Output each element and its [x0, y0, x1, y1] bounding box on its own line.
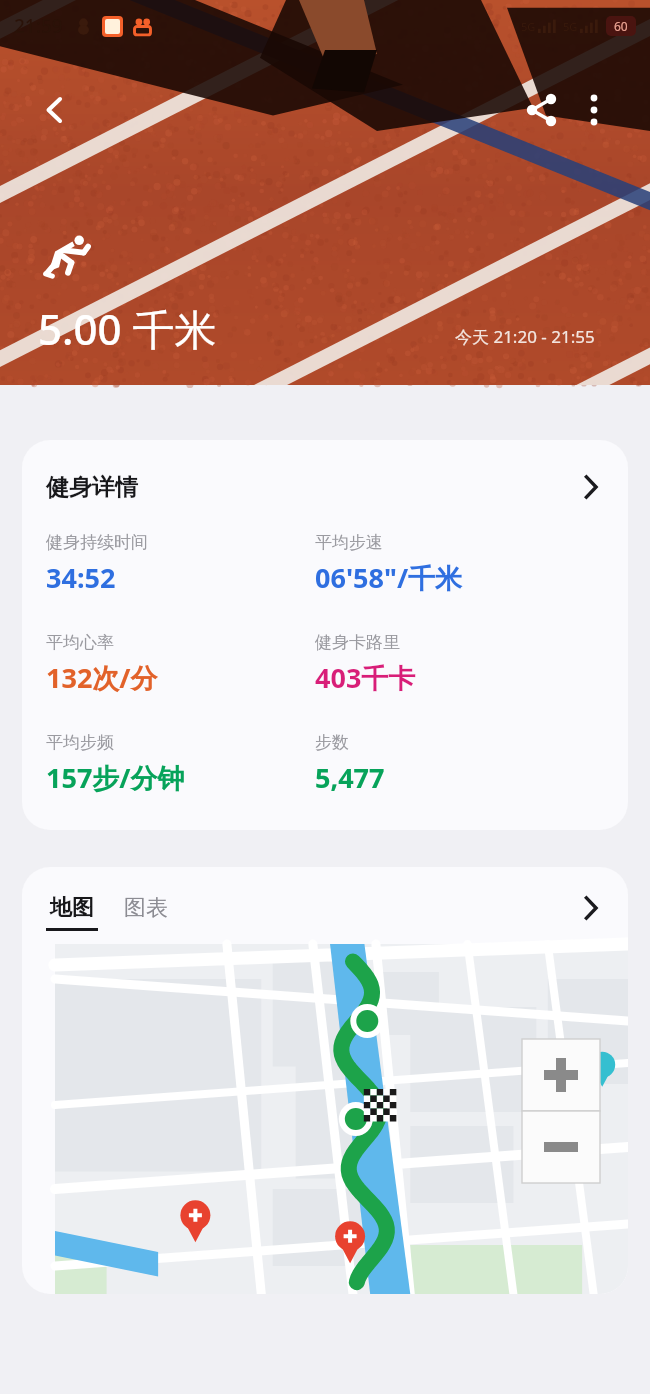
staticText: 平均步速	[315, 532, 383, 553]
button[interactable]: Share	[514, 82, 570, 138]
staticText: 健身卡路里	[315, 632, 400, 653]
staticText: 403千卡	[315, 659, 416, 696]
staticText: 地图	[50, 894, 94, 922]
button[interactable]: 地图	[46, 894, 98, 931]
button[interactable]: Zoom out	[522, 1111, 600, 1183]
staticText: 今天 21:20 - 21:55	[455, 325, 595, 348]
staticText: 21:59	[14, 13, 63, 39]
staticText: 5,477	[315, 759, 385, 796]
staticText: 步数	[315, 732, 349, 753]
staticText: 60	[614, 18, 628, 34]
button[interactable]: Back	[26, 82, 82, 138]
staticText: 图表	[124, 894, 168, 922]
staticText: 平均步频	[46, 732, 114, 753]
staticText: 34:52	[46, 559, 116, 596]
button[interactable]: Open map	[576, 893, 606, 923]
staticText: 132次/分	[46, 659, 158, 696]
staticText: 157步/分钟	[46, 759, 185, 796]
staticText: 5G	[563, 19, 578, 34]
button[interactable]: Zoom in	[522, 1039, 600, 1111]
staticText: 5G	[521, 19, 536, 34]
staticText: 健身详情	[46, 473, 138, 502]
staticText: 健身持续时间	[46, 532, 148, 553]
button[interactable]: 图表	[124, 894, 168, 931]
button[interactable]: More options	[566, 82, 622, 138]
button[interactable]: 健身详情	[22, 440, 628, 830]
staticText: 平均心率	[46, 632, 114, 653]
staticText: 5.00 千米	[38, 300, 217, 357]
staticText: 06'58"/千米	[315, 559, 463, 596]
